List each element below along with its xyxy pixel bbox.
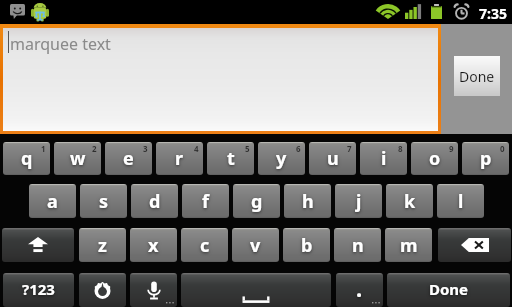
- staticText: .: [356, 273, 363, 303]
- staticText: u: [327, 146, 339, 171]
- staticText: 7:35: [479, 4, 507, 23]
- staticText: j: [356, 189, 362, 214]
- staticText: h: [302, 189, 314, 214]
- staticText: z: [98, 233, 107, 258]
- staticText: 6: [296, 143, 301, 154]
- button[interactable]: Done: [454, 56, 500, 96]
- button[interactable]: g: [233, 184, 280, 218]
- staticText: l: [458, 189, 464, 214]
- staticText: o: [429, 146, 441, 171]
- staticText: s: [99, 189, 109, 214]
- button[interactable]: t: [207, 142, 254, 175]
- button[interactable]: Done: [387, 273, 510, 307]
- button[interactable]: Shift: [2, 228, 74, 262]
- button[interactable]: m: [385, 228, 432, 262]
- staticText: 5: [245, 143, 250, 154]
- staticText: n: [352, 233, 364, 258]
- button[interactable]: a: [29, 184, 76, 218]
- staticText: v: [250, 233, 261, 258]
- staticText: x: [148, 233, 159, 258]
- button[interactable]: b: [283, 228, 330, 262]
- button[interactable]: marquee text: [3, 28, 438, 131]
- button[interactable]: l: [437, 184, 484, 218]
- staticText: k: [404, 189, 416, 214]
- staticText: 9: [449, 143, 454, 154]
- button[interactable]: s: [80, 184, 127, 218]
- staticText: Done: [429, 279, 469, 299]
- staticText: m: [400, 233, 418, 258]
- button[interactable]: z: [79, 228, 126, 262]
- button[interactable]: q: [3, 142, 50, 175]
- button[interactable]: k: [386, 184, 433, 218]
- button[interactable]: i: [360, 142, 407, 175]
- button[interactable]: h: [284, 184, 331, 218]
- staticText: 2: [92, 143, 97, 154]
- staticText: 3: [143, 143, 148, 154]
- button[interactable]: e: [105, 142, 152, 175]
- button[interactable]: d: [131, 184, 178, 218]
- button[interactable]: x: [130, 228, 177, 262]
- button[interactable]: r: [156, 142, 203, 175]
- button[interactable]: u: [309, 142, 356, 175]
- staticText: 4: [194, 143, 199, 154]
- staticText: b: [301, 233, 313, 258]
- staticText: q: [21, 146, 33, 171]
- button[interactable]: Input method: [79, 273, 126, 307]
- staticText: d: [149, 189, 161, 214]
- staticText: y: [276, 146, 287, 171]
- button[interactable]: f: [182, 184, 229, 218]
- button[interactable]: Space: [181, 273, 331, 307]
- button[interactable]: Delete: [438, 228, 511, 262]
- button[interactable]: Voice input: [130, 273, 177, 307]
- button[interactable]: .: [336, 273, 383, 307]
- staticText: c: [200, 233, 210, 258]
- staticText: marquee text: [10, 33, 111, 55]
- staticText: 0: [500, 143, 505, 154]
- staticText: p: [480, 146, 492, 171]
- staticText: a: [47, 189, 58, 214]
- button[interactable]: j: [335, 184, 382, 218]
- staticText: f: [202, 189, 209, 214]
- button[interactable]: v: [232, 228, 279, 262]
- button[interactable]: o: [411, 142, 458, 175]
- button[interactable]: w: [54, 142, 101, 175]
- staticText: e: [123, 146, 134, 171]
- staticText: r: [175, 146, 184, 171]
- staticText: i: [381, 146, 387, 171]
- button[interactable]: y: [258, 142, 305, 175]
- staticText: 8: [398, 143, 403, 154]
- staticText: g: [251, 189, 263, 214]
- button[interactable]: n: [334, 228, 381, 262]
- staticText: 1: [41, 143, 46, 154]
- staticText: ?123: [22, 279, 55, 299]
- staticText: 7: [347, 143, 352, 154]
- staticText: Done: [459, 67, 495, 86]
- button[interactable]: p: [462, 142, 509, 175]
- staticText: w: [70, 146, 86, 171]
- button[interactable]: ?123: [3, 273, 74, 307]
- button[interactable]: c: [181, 228, 228, 262]
- staticText: t: [227, 146, 235, 171]
